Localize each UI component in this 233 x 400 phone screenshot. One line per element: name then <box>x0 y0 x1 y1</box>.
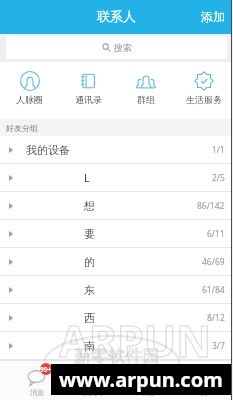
button[interactable]: 添加 <box>193 3 233 30</box>
staticText: 添加 <box>201 9 225 24</box>
staticText: 西 <box>84 311 95 325</box>
staticText: 搜索 <box>114 42 132 53</box>
button[interactable]: 群组 <box>117 62 175 105</box>
staticText: 动态 <box>140 388 154 397</box>
button[interactable]: 我的设备 <box>0 136 233 163</box>
button[interactable]: 通讯录 <box>59 62 117 105</box>
staticText: 好友分组 <box>6 123 38 133</box>
staticText: 61/84 <box>202 284 225 296</box>
staticText: 86/142 <box>197 200 225 212</box>
button[interactable]: L <box>0 164 233 191</box>
staticText: 消息 <box>30 388 44 397</box>
button[interactable]: 动态 <box>119 361 175 397</box>
staticText: 通讯录 <box>75 94 102 105</box>
staticText: 46/69 <box>202 256 225 268</box>
staticText: 生活服务 <box>186 94 222 105</box>
button[interactable]: 生活服务 <box>175 62 233 105</box>
staticText: 的 <box>84 255 95 269</box>
button[interactable]: 东 <box>0 276 233 303</box>
staticText: L <box>84 170 90 185</box>
staticText: 我的设备 <box>26 143 70 157</box>
button[interactable]: 我 <box>175 361 231 397</box>
staticText: 东 <box>84 283 95 297</box>
staticText: 6/11 <box>207 228 225 240</box>
staticText: 2/5 <box>212 172 225 184</box>
staticText: ARPUN <box>59 311 212 370</box>
staticText: 要 <box>84 227 95 241</box>
button[interactable]: 西 <box>0 304 233 331</box>
staticText: 我 <box>200 388 207 397</box>
staticText: 99+ <box>40 365 52 374</box>
staticText: www.arpun.com <box>59 366 223 393</box>
button[interactable]: 的 <box>0 248 233 275</box>
staticText: 人脉圈 <box>16 94 43 105</box>
button[interactable]: 想 <box>0 192 233 219</box>
staticText: 联系人 <box>81 388 102 397</box>
button[interactable]: 南 <box>0 332 233 359</box>
button[interactable]: 要 <box>0 220 233 247</box>
staticText: 南 <box>84 339 95 353</box>
staticText: 新零软件园 <box>74 346 159 367</box>
button[interactable]: 联系人 <box>64 361 119 397</box>
button[interactable]: 人脉圈 <box>0 62 59 105</box>
staticText: 3/7 <box>212 340 225 352</box>
button[interactable]: 搜索 <box>6 36 227 59</box>
button[interactable]: 消息 <box>9 361 64 397</box>
staticText: 想 <box>84 199 95 213</box>
staticText: 联系人 <box>97 8 136 24</box>
staticText: 1/1 <box>212 144 225 156</box>
staticText: 群组 <box>137 94 155 105</box>
staticText: 8/12 <box>207 312 225 324</box>
